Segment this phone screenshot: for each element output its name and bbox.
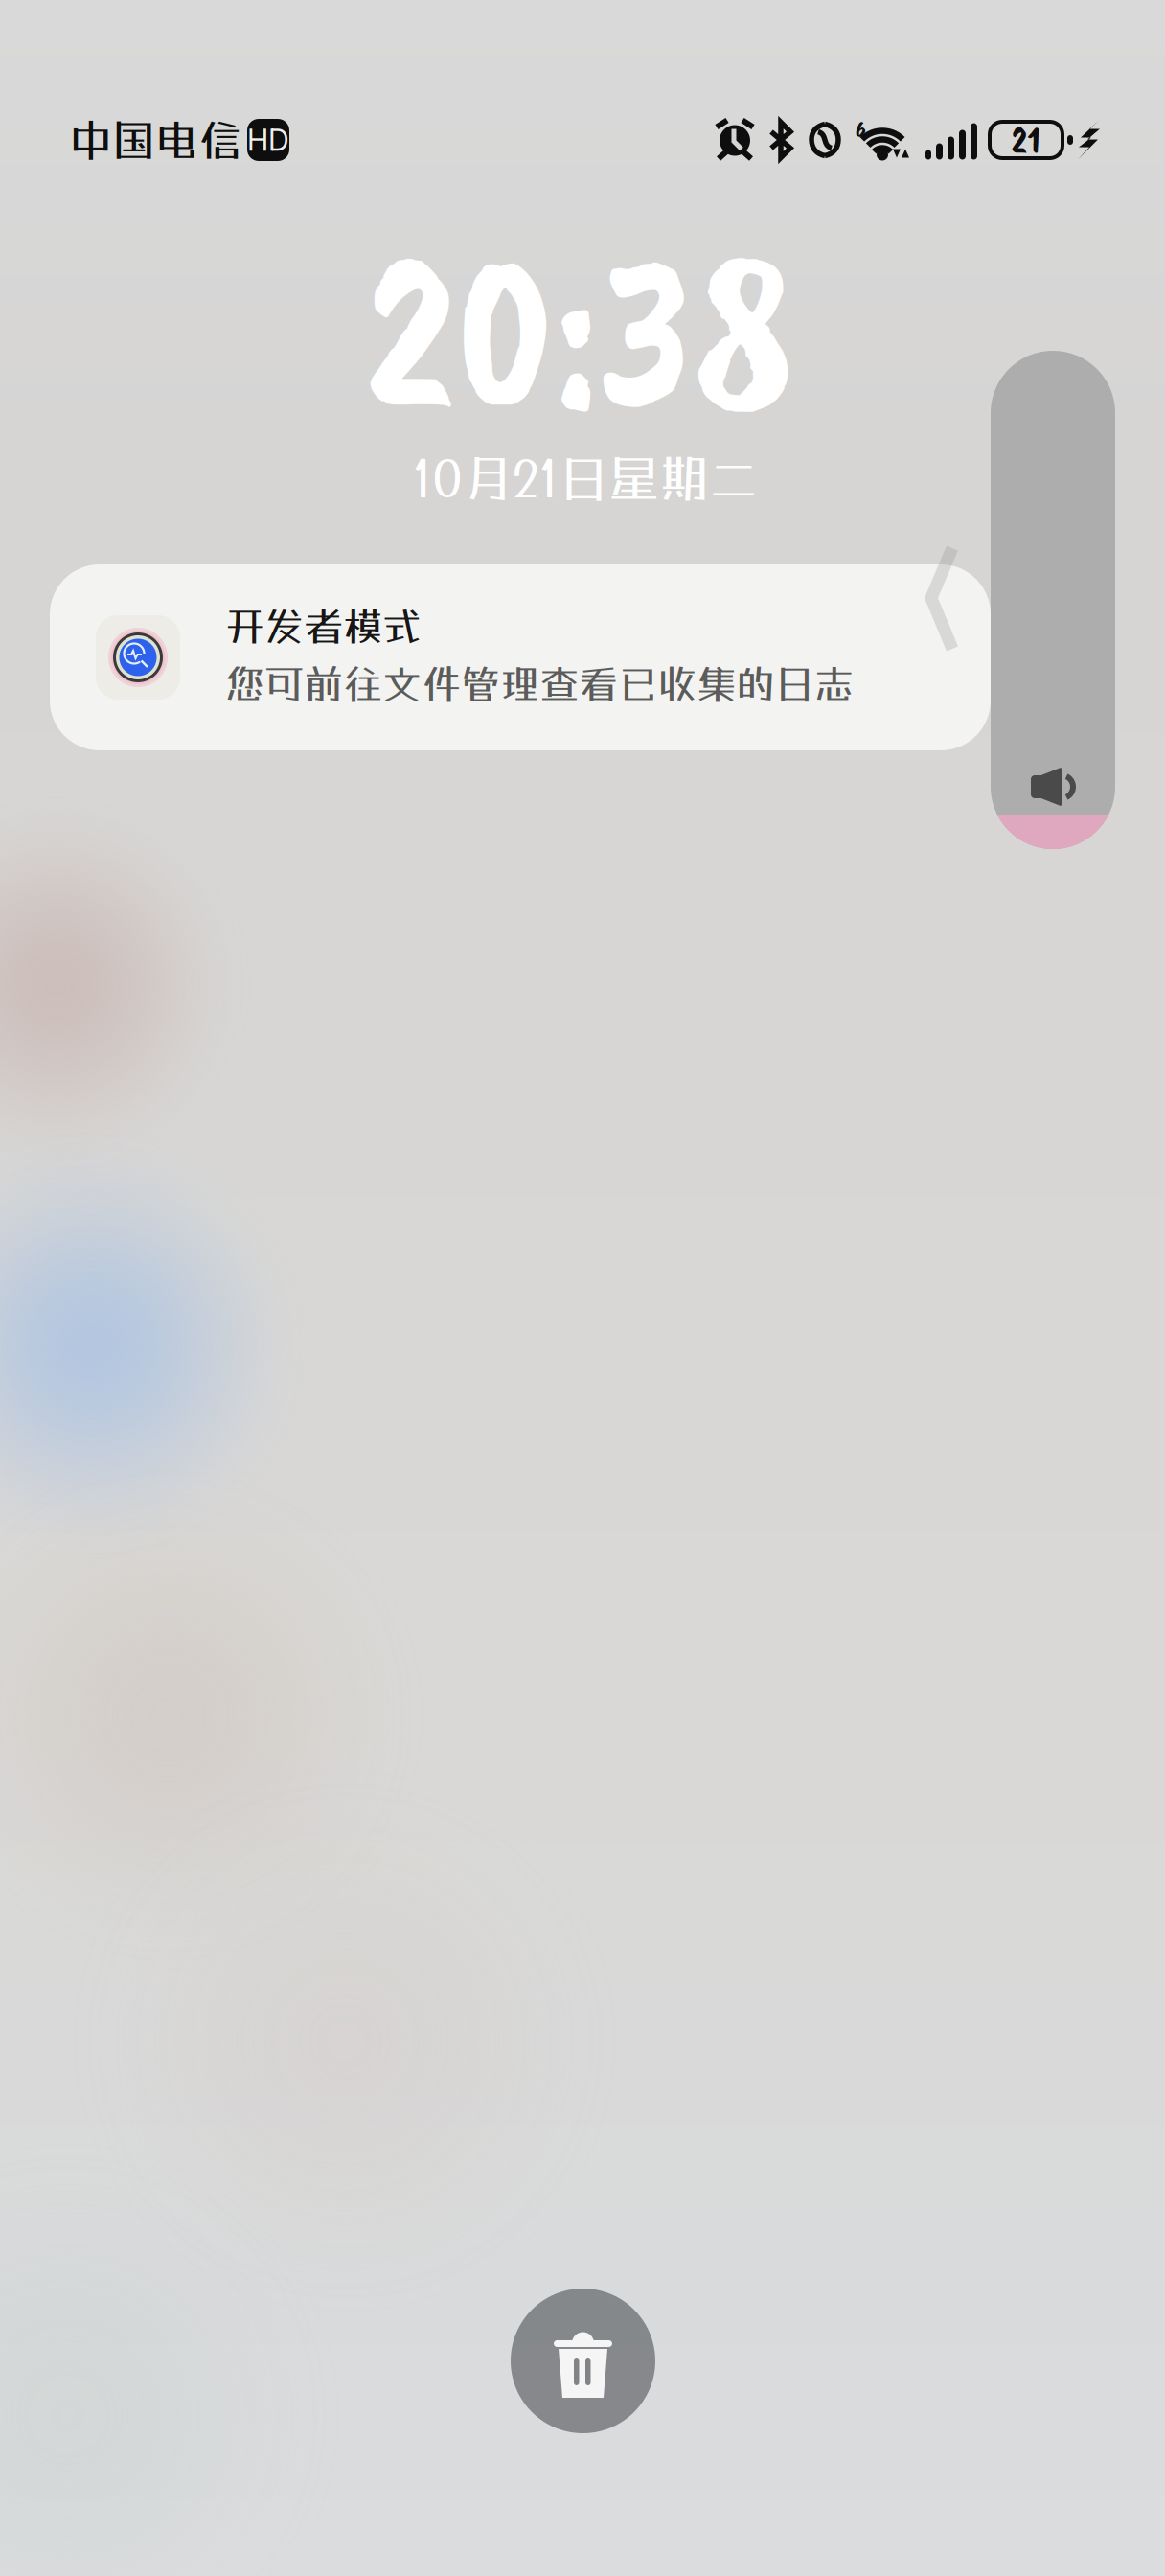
button[interactable]: Volume [991,351,1115,849]
staticText: 21 [1011,116,1041,164]
staticText: 中国电信 [69,114,241,166]
staticText: 开发者模式 [225,603,422,650]
staticText: 您可前往文件管理查看已收集的日志 [225,660,854,707]
staticText: 20:38 [365,193,793,470]
staticText: HD [247,122,289,158]
staticText: 10月21日星期二 [412,448,758,507]
button[interactable]: Clear all notifications [511,2288,655,2433]
staticText: 6 [856,115,866,143]
button[interactable]: 开发者模式 [50,564,991,750]
